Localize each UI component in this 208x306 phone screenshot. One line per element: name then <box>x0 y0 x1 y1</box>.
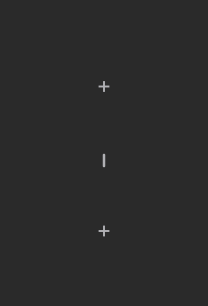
button[interactable]: Add <box>0 51 208 122</box>
button[interactable]: Add item <box>0 199 208 263</box>
